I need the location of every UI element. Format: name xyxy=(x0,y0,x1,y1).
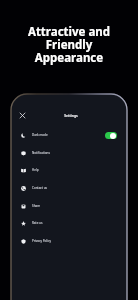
button[interactable]: Privacy Policy xyxy=(11,232,127,250)
button[interactable]: Notifications xyxy=(11,144,127,162)
staticText: Contact us xyxy=(32,186,47,190)
staticText: Help xyxy=(32,168,39,172)
button[interactable]: Close xyxy=(16,109,28,121)
staticText: Attractive and Friendly Appearance xyxy=(0,24,138,66)
button[interactable]: Dark mode toggle xyxy=(105,132,117,139)
staticText: Dark mode xyxy=(32,133,48,137)
button[interactable]: Share xyxy=(11,197,127,215)
staticText: Share xyxy=(32,204,41,208)
button[interactable]: Rate us xyxy=(11,214,127,232)
button[interactable]: Contact us xyxy=(11,179,127,197)
staticText: Privacy Policy xyxy=(32,239,51,243)
staticText: Notifications xyxy=(32,151,50,155)
button[interactable]: Dark mode xyxy=(11,126,127,144)
staticText: Rate us xyxy=(32,221,43,225)
staticText: Settings xyxy=(13,113,127,118)
button[interactable]: Help xyxy=(11,161,127,179)
